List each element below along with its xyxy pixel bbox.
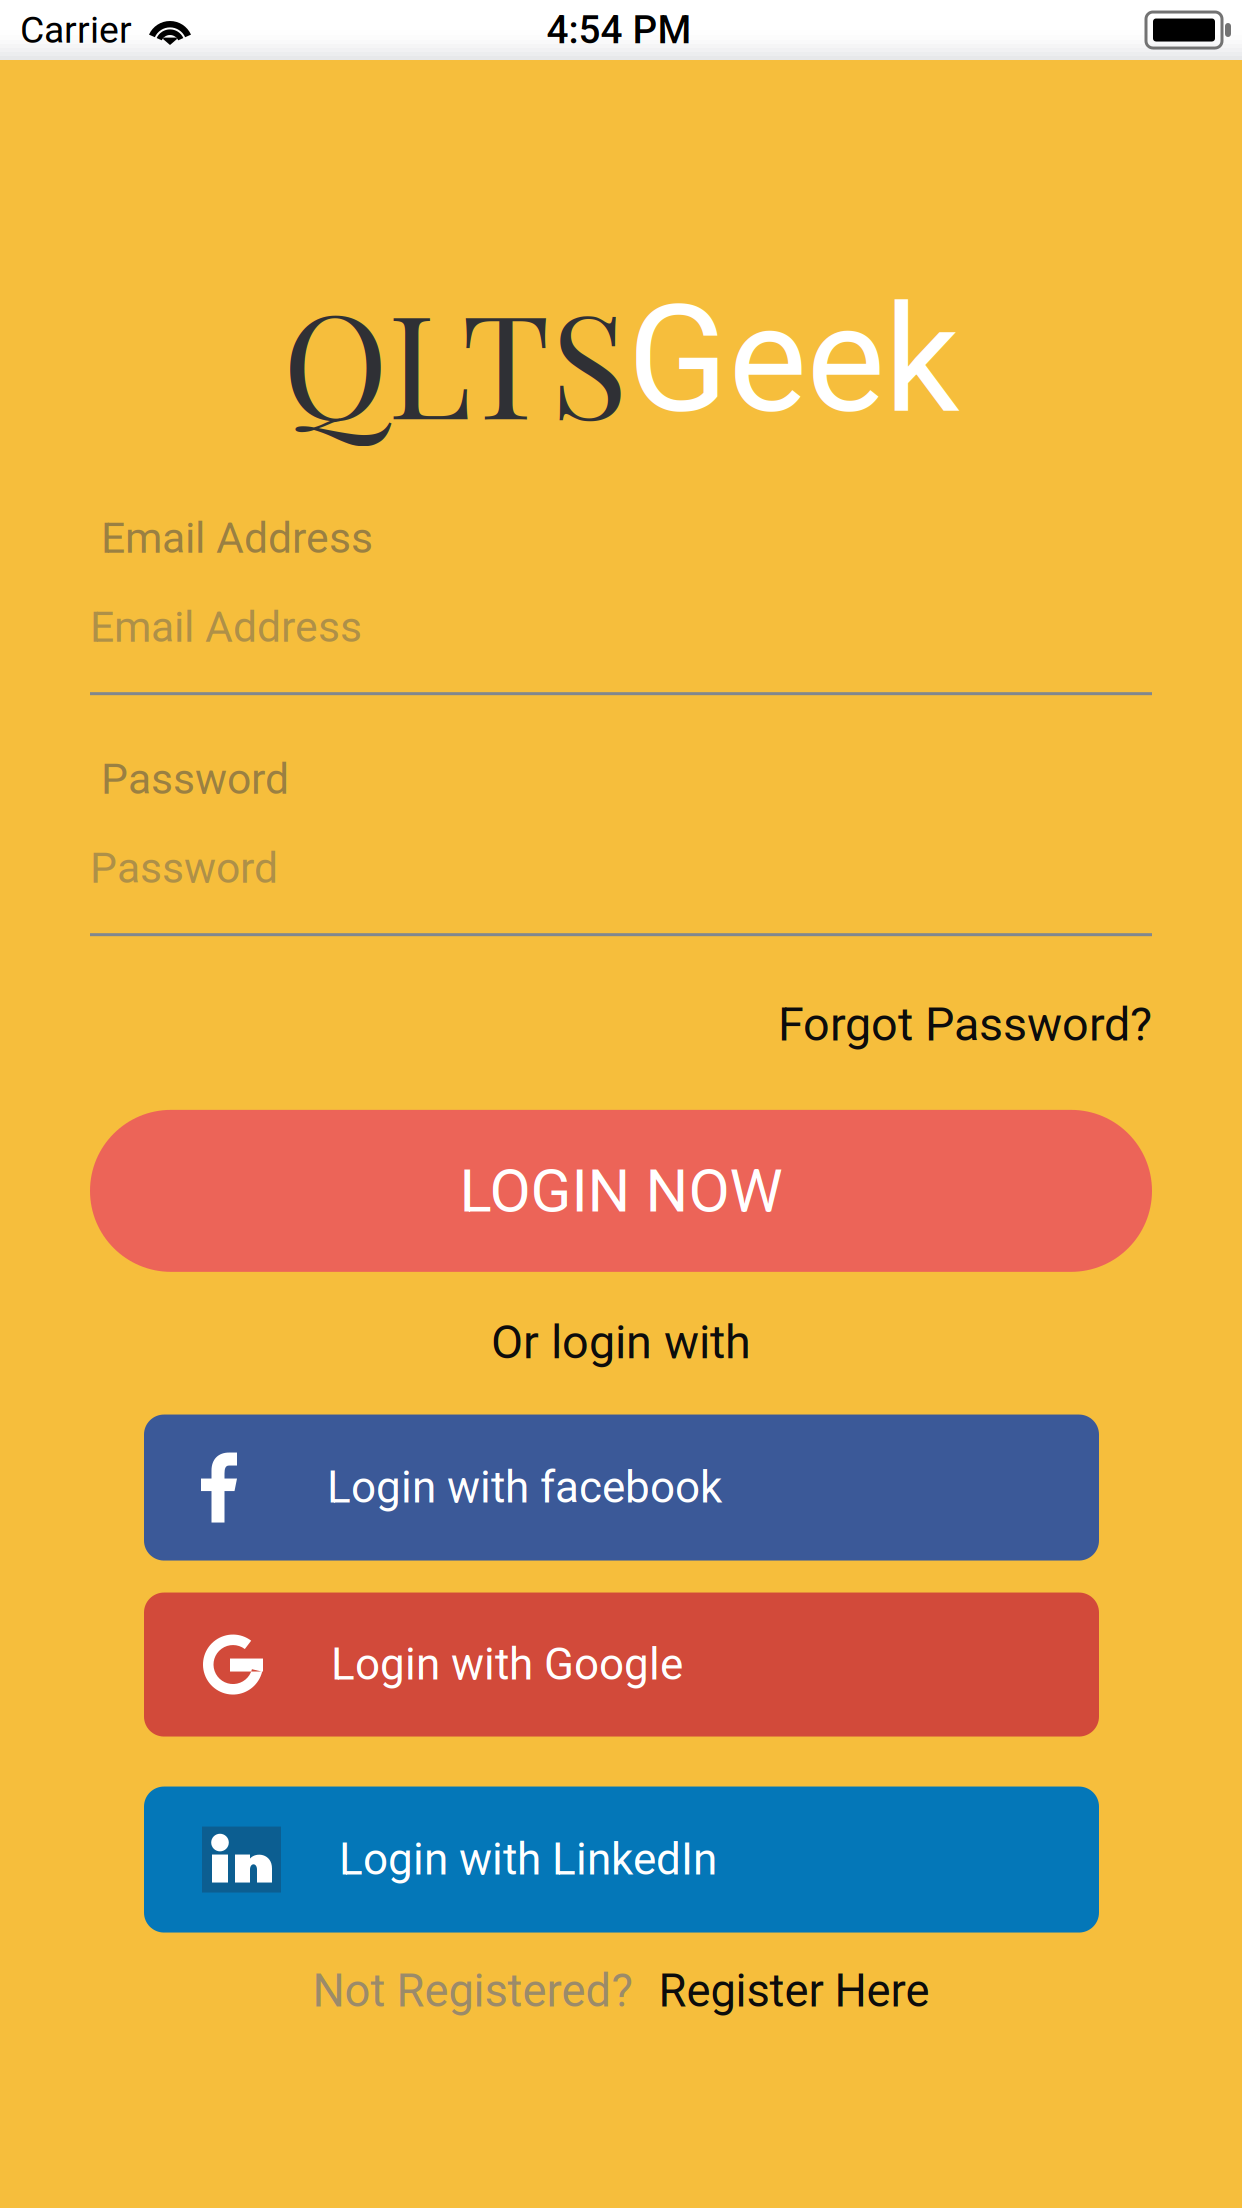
staticText: Register Here (658, 1965, 929, 2018)
staticText: Geek (627, 273, 959, 447)
button[interactable]: Login with LinkedIn (144, 1787, 1099, 1933)
staticText: Carrier (20, 8, 132, 52)
staticText: Login with facebook (327, 1462, 722, 1513)
staticText: Password (101, 754, 289, 804)
staticText: Forgot Password? (778, 997, 1152, 1052)
button[interactable]: LOGIN NOW (90, 1110, 1152, 1272)
staticText: Password (90, 843, 278, 893)
staticText: Not Registered? (312, 1965, 632, 2018)
staticText: 4:54 PM (546, 7, 691, 53)
staticText: Login with Google (331, 1639, 683, 1690)
staticText: QLTS (282, 265, 627, 455)
staticText: LOGIN NOW (459, 1156, 782, 1226)
staticText: Email Address (90, 602, 362, 652)
staticText: Login with LinkedIn (339, 1834, 717, 1885)
staticText: Or login with (491, 1315, 751, 1370)
button[interactable]: Login with facebook (144, 1415, 1099, 1561)
button[interactable]: Forgot Password? (778, 997, 1152, 1052)
button[interactable]: Login with Google (144, 1593, 1099, 1737)
staticText: Email Address (101, 513, 373, 563)
button[interactable]: Register Here (632, 1965, 929, 2018)
